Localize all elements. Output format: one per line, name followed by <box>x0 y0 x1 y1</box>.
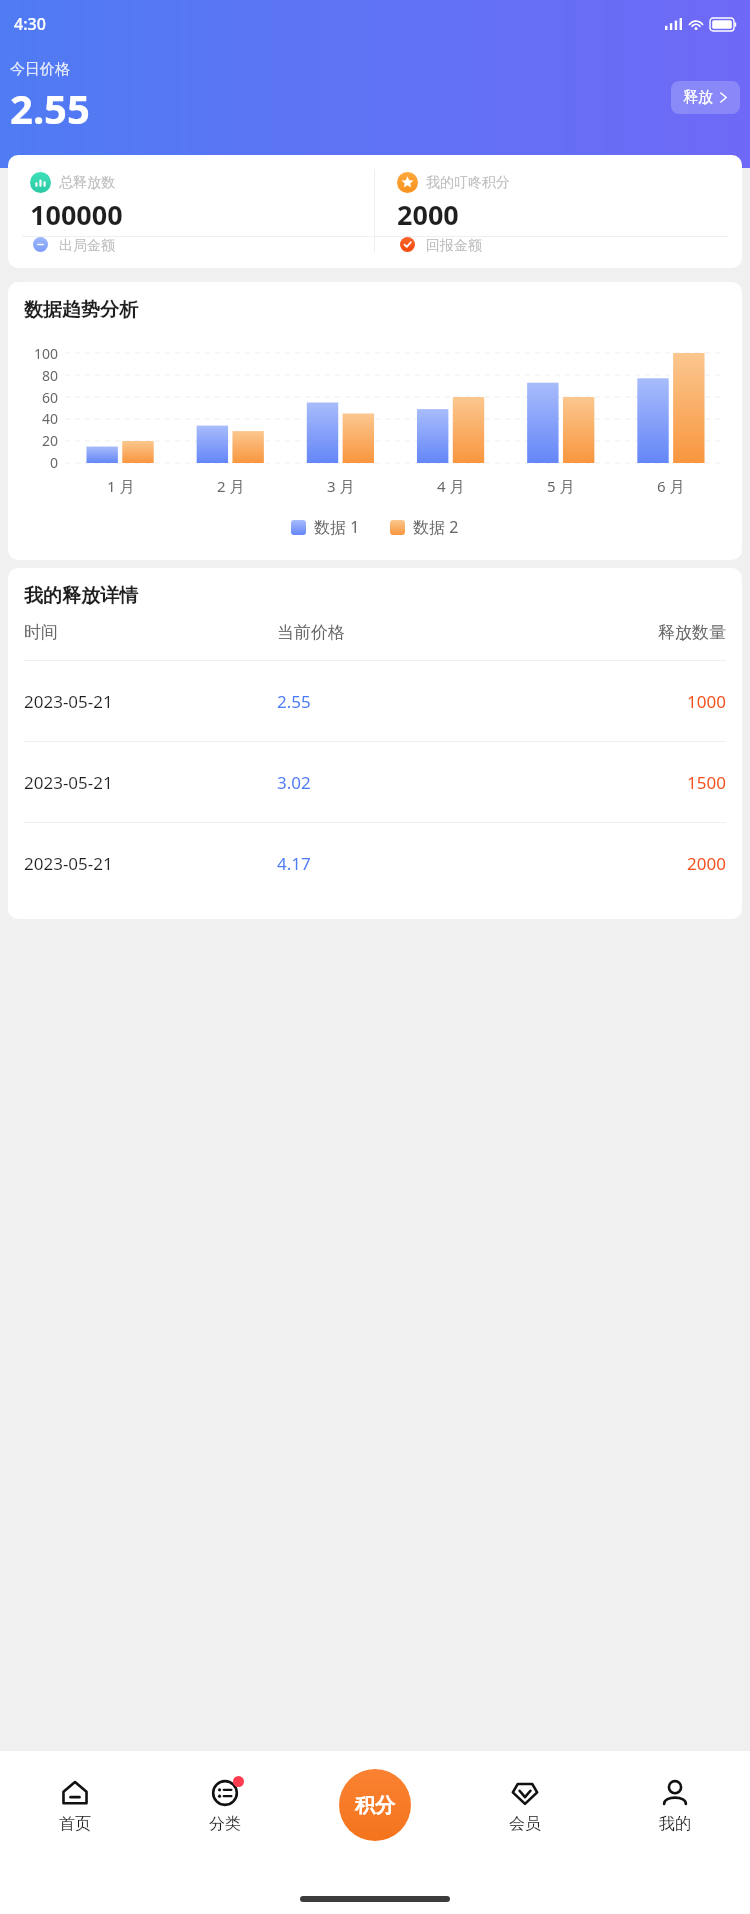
staticText: 数据趋势分析 <box>24 298 138 322</box>
staticText: 2023-05-21 <box>24 771 277 794</box>
staticText: 80 <box>41 366 58 385</box>
staticText: 100000 <box>30 196 123 233</box>
staticText: 释放数量 <box>518 622 726 643</box>
staticText: 数据 2 <box>413 516 459 538</box>
staticText: 5 月 <box>547 476 575 496</box>
button[interactable]: 我的 <box>600 1750 750 1860</box>
staticText: 1000 <box>518 690 726 713</box>
staticText: 回报金额 <box>426 237 482 252</box>
staticText: 我的释放详情 <box>24 584 138 608</box>
staticText: 2023-05-21 <box>24 852 277 875</box>
staticText: 释放 <box>683 88 713 107</box>
staticText: 时间 <box>24 622 277 643</box>
staticText: 2000 <box>518 852 726 875</box>
staticText: 40 <box>41 409 58 428</box>
staticText: 我的叮咚积分 <box>426 174 510 192</box>
staticText: 分类 <box>209 1814 241 1834</box>
staticText: 4.17 <box>277 852 518 875</box>
button[interactable]: 2023-05-21 <box>24 823 726 903</box>
staticText: 1500 <box>518 771 726 794</box>
staticText: 会员 <box>509 1814 541 1834</box>
staticText: 2000 <box>397 196 459 233</box>
staticText: 2.55 <box>277 690 518 713</box>
button[interactable]: 出局金额 <box>8 237 374 252</box>
button[interactable]: 会员 <box>450 1750 600 1860</box>
staticText: 今日价格 <box>10 60 70 79</box>
staticText: 首页 <box>59 1814 91 1834</box>
button[interactable]: 释放 <box>671 81 740 114</box>
staticText: 2 月 <box>217 476 245 496</box>
staticText: 4 月 <box>437 476 465 496</box>
staticText: 数据 1 <box>314 516 360 538</box>
staticText: 6 月 <box>657 476 685 496</box>
staticText: 100 <box>33 344 58 363</box>
staticText: 2023-05-21 <box>24 690 277 713</box>
staticText: 60 <box>41 388 58 407</box>
staticText: 20 <box>41 431 58 450</box>
staticText: 3.02 <box>277 771 518 794</box>
button[interactable]: 回报金额 <box>375 237 742 252</box>
staticText: 当前价格 <box>277 622 518 643</box>
button[interactable]: 首页 <box>0 1750 150 1860</box>
staticText: 0 <box>49 453 58 472</box>
staticText: 出局金额 <box>59 237 115 252</box>
button[interactable]: 2023-05-21 <box>24 661 726 741</box>
staticText: 4:30 <box>14 13 46 35</box>
staticText: 1 月 <box>107 476 135 496</box>
staticText: 积分 <box>355 1793 395 1818</box>
button[interactable]: 分类 <box>150 1750 300 1860</box>
staticText: 3 月 <box>327 476 355 496</box>
staticText: 2.55 <box>10 81 90 135</box>
button[interactable]: 我的叮咚积分 <box>375 169 742 236</box>
staticText: 我的 <box>659 1814 691 1834</box>
button[interactable]: 总释放数 <box>8 169 374 236</box>
staticText: 总释放数 <box>59 174 115 192</box>
button[interactable]: 积分 <box>339 1769 411 1841</box>
button[interactable]: 2023-05-21 <box>24 742 726 822</box>
